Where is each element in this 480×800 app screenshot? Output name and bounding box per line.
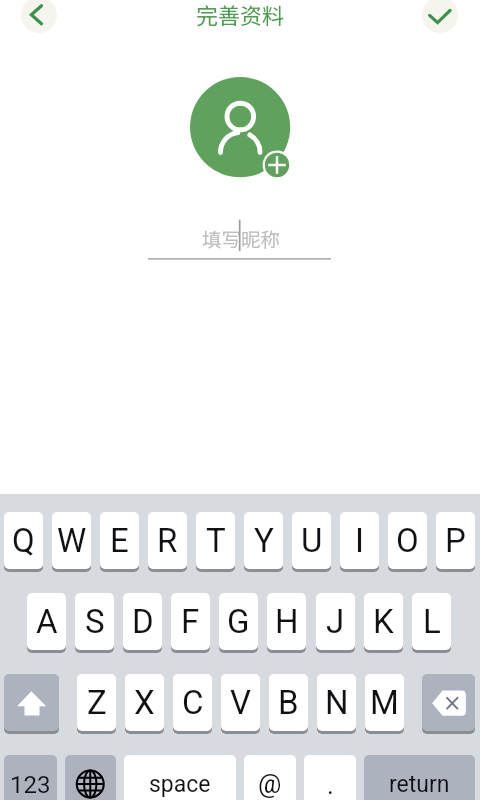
- button[interactable]: A: [27, 593, 66, 650]
- button[interactable]: Change avatar: [190, 77, 291, 178]
- staticText: O: [396, 521, 419, 560]
- button[interactable]: 123: [4, 755, 57, 800]
- button[interactable]: B: [269, 674, 308, 731]
- button[interactable]: Backspace: [422, 674, 475, 731]
- staticText: H: [275, 602, 299, 641]
- button[interactable]: K: [364, 593, 403, 650]
- staticText: W: [57, 521, 87, 560]
- staticText: U: [301, 521, 323, 560]
- button[interactable]: H: [267, 593, 306, 650]
- button[interactable]: O: [388, 512, 427, 569]
- button[interactable]: L: [412, 593, 451, 650]
- button[interactable]: I: [340, 512, 379, 569]
- button[interactable]: C: [173, 674, 212, 731]
- staticText: @: [258, 769, 282, 799]
- button[interactable]: M: [365, 674, 404, 731]
- button[interactable]: Shift: [4, 674, 59, 731]
- button[interactable]: D: [123, 593, 162, 650]
- staticText: B: [278, 683, 299, 722]
- button[interactable]: X: [125, 674, 164, 731]
- staticText: 123: [10, 771, 51, 799]
- staticText: L: [423, 602, 441, 641]
- button[interactable]: J: [316, 593, 355, 650]
- button[interactable]: R: [148, 512, 187, 569]
- button[interactable]: W: [52, 512, 91, 569]
- staticText: .: [327, 770, 334, 800]
- staticText: E: [110, 521, 129, 560]
- button[interactable]: Change keyboard: [65, 755, 116, 800]
- staticText: G: [227, 602, 250, 641]
- button[interactable]: Y: [244, 512, 283, 569]
- staticText: P: [445, 521, 466, 560]
- staticText: Z: [87, 683, 107, 722]
- staticText: Q: [12, 521, 35, 560]
- button[interactable]: space: [124, 755, 236, 800]
- button[interactable]: V: [221, 674, 260, 731]
- staticText: K: [373, 602, 394, 641]
- button[interactable]: .: [304, 755, 356, 800]
- staticText: M: [370, 683, 399, 722]
- staticText: 填写昵称: [202, 224, 281, 252]
- button[interactable]: Q: [4, 512, 43, 569]
- button[interactable]: @: [244, 755, 296, 800]
- button[interactable]: U: [292, 512, 331, 569]
- button[interactable]: F: [171, 593, 210, 650]
- button[interactable]: Add photo: [262, 150, 292, 180]
- staticText: R: [157, 521, 178, 560]
- staticText: return: [389, 771, 450, 798]
- staticText: C: [182, 683, 204, 722]
- staticText: X: [134, 683, 155, 722]
- staticText: I: [355, 521, 364, 560]
- staticText: N: [325, 683, 349, 722]
- staticText: V: [230, 683, 252, 722]
- button[interactable]: E: [100, 512, 139, 569]
- button[interactable]: P: [436, 512, 475, 569]
- staticText: space: [149, 771, 211, 798]
- button[interactable]: N: [317, 674, 356, 731]
- staticText: J: [326, 602, 345, 641]
- staticText: 完善资料: [0, 0, 480, 30]
- staticText: A: [36, 602, 58, 641]
- button[interactable]: Z: [77, 674, 116, 731]
- button[interactable]: G: [219, 593, 258, 650]
- staticText: Y: [254, 521, 274, 560]
- staticText: D: [132, 602, 154, 641]
- button[interactable]: 填写昵称: [148, 219, 331, 260]
- button[interactable]: S: [75, 593, 114, 650]
- staticText: T: [206, 521, 226, 560]
- button[interactable]: return: [364, 755, 475, 800]
- staticText: F: [181, 602, 200, 641]
- button[interactable]: T: [196, 512, 235, 569]
- button[interactable]: Back: [21, 0, 57, 33]
- button[interactable]: Confirm: [422, 0, 458, 33]
- staticText: S: [85, 602, 105, 641]
